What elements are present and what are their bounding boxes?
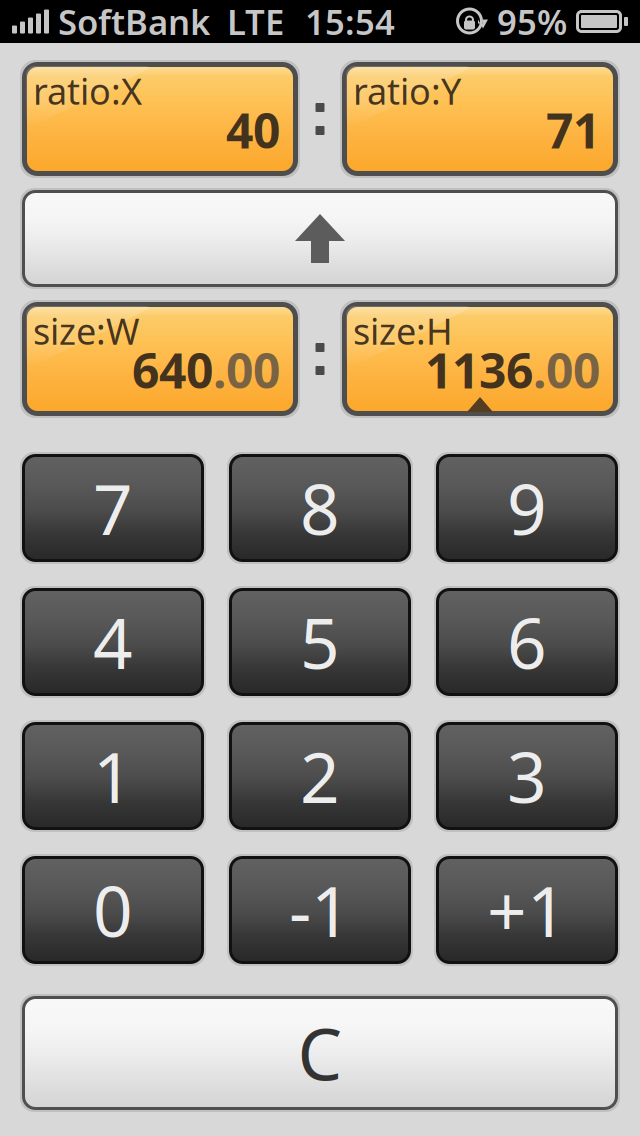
staticText: 0 (93, 864, 133, 956)
staticText: 4 (93, 596, 133, 688)
staticText: 9 (507, 462, 547, 554)
button[interactable]: size:W (20, 300, 300, 418)
staticText: 15:54 (305, 0, 395, 44)
staticText: 6 (507, 596, 547, 688)
staticText: size:H (353, 307, 453, 355)
staticText: SoftBank (58, 0, 210, 44)
button[interactable]: -1 (227, 854, 413, 966)
button[interactable]: +1 (434, 854, 620, 966)
staticText: 640 (132, 338, 213, 402)
staticText: 1 (93, 730, 133, 822)
staticText: +1 (487, 864, 567, 956)
button[interactable]: 8 (227, 452, 413, 564)
button[interactable]: ratio:X (20, 60, 300, 178)
staticText: ratio:Y (353, 67, 461, 115)
staticText: 2 (300, 730, 340, 822)
staticText: 40 (226, 98, 280, 162)
button[interactable]: 7 (20, 452, 206, 564)
button[interactable]: 2 (227, 720, 413, 832)
staticText: 3 (507, 730, 547, 822)
button[interactable]: size:H (340, 300, 620, 418)
staticText: 71 (546, 98, 600, 162)
staticText: 5 (300, 596, 340, 688)
button[interactable]: 6 (434, 586, 620, 698)
staticText: -1 (289, 864, 351, 956)
staticText: size:W (33, 307, 139, 355)
staticText: 95% (497, 0, 567, 44)
button[interactable]: 4 (20, 586, 206, 698)
button[interactable]: ratio:Y (340, 60, 620, 178)
staticText: 7 (93, 462, 133, 554)
staticText: 1136 (425, 338, 533, 402)
button[interactable]: C (20, 994, 620, 1112)
button[interactable]: 9 (434, 452, 620, 564)
button[interactable]: 3 (434, 720, 620, 832)
staticText: .00 (213, 338, 280, 402)
staticText: .00 (533, 338, 600, 402)
staticText: 8 (300, 462, 340, 554)
button[interactable]: 0 (20, 854, 206, 966)
button[interactable]: Swap ratio and size (20, 188, 620, 289)
staticText: C (297, 1006, 342, 1100)
button[interactable]: 1 (20, 720, 206, 832)
staticText: LTE (227, 0, 284, 44)
button[interactable]: 5 (227, 586, 413, 698)
staticText: ratio:X (33, 67, 142, 115)
